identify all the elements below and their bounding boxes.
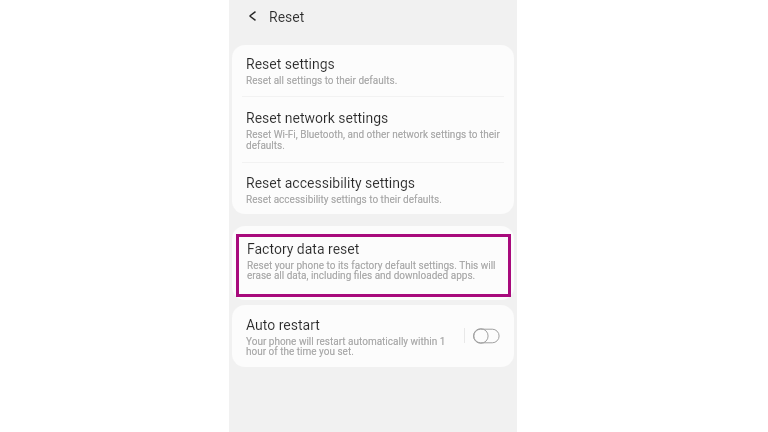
staticText: Your phone will restart automatically wi… — [246, 336, 461, 358]
staticText: defaults. — [246, 140, 285, 152]
staticText: Factory data reset — [247, 241, 360, 257]
staticText: Reset accessibility settings — [246, 175, 416, 191]
staticText: Reset all settings to their defaults. — [246, 75, 398, 87]
staticText: Reset accessibility settings to their de… — [246, 194, 442, 206]
button[interactable]: Factory data reset — [239, 237, 508, 294]
button[interactable]: Auto restart — [232, 305, 460, 367]
staticText: Reset settings — [246, 56, 335, 72]
button[interactable]: Reset network settings — [232, 97, 514, 162]
button[interactable]: Navigate up — [237, 3, 267, 29]
staticText: Reset your phone to its factory default … — [247, 260, 505, 282]
staticText: Auto restart — [246, 317, 320, 333]
staticText: Reset network settings — [246, 110, 389, 126]
button[interactable]: Reset settings — [232, 45, 514, 96]
button[interactable]: Reset accessibility settings — [232, 163, 514, 214]
staticText: Reset — [269, 9, 305, 25]
staticText: Reset Wi-Fi, Bluetooth, and other networ… — [246, 129, 500, 141]
button[interactable]: Auto restart, off — [472, 325, 501, 347]
